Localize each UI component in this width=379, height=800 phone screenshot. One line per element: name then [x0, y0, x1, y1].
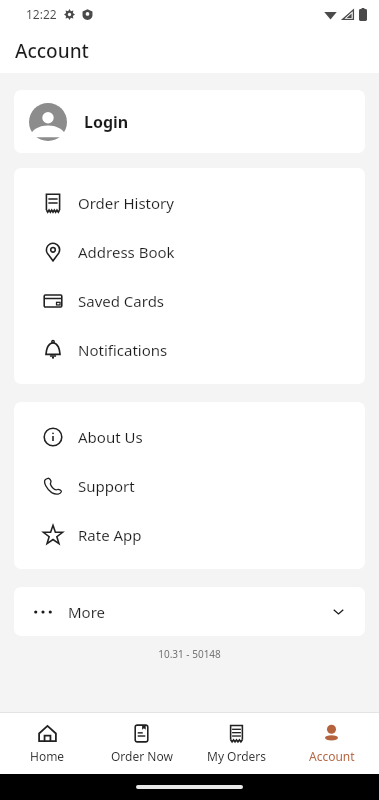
button[interactable]: Address Book: [14, 227, 365, 276]
button[interactable]: Notifications: [14, 325, 365, 374]
staticText: Account: [15, 38, 89, 64]
staticText: My Orders: [207, 748, 267, 764]
button[interactable]: Order Now: [94, 712, 189, 774]
button[interactable]: Login: [14, 90, 365, 153]
staticText: 10.31 - 50148: [0, 647, 379, 661]
button[interactable]: My Orders: [189, 712, 284, 774]
button[interactable]: Order History: [14, 178, 365, 227]
button[interactable]: Saved Cards: [14, 276, 365, 325]
staticText: Account: [309, 748, 355, 764]
button[interactable]: More: [14, 587, 365, 636]
staticText: Order History: [78, 193, 174, 213]
button[interactable]: Support: [14, 461, 365, 510]
staticText: Rate App: [78, 525, 142, 545]
button[interactable]: Account: [284, 712, 379, 774]
staticText: Order Now: [111, 748, 173, 764]
staticText: 12:22: [26, 6, 57, 22]
staticText: Home: [30, 748, 65, 764]
staticText: Support: [78, 476, 135, 496]
staticText: Saved Cards: [78, 291, 165, 311]
staticText: More: [68, 602, 106, 622]
button[interactable]: About Us: [14, 412, 365, 461]
staticText: Notifications: [78, 340, 168, 360]
staticText: Address Book: [78, 242, 175, 262]
staticText: About Us: [78, 427, 143, 447]
button[interactable]: Rate App: [14, 510, 365, 559]
staticText: Login: [84, 111, 129, 133]
button[interactable]: Home: [0, 712, 94, 774]
